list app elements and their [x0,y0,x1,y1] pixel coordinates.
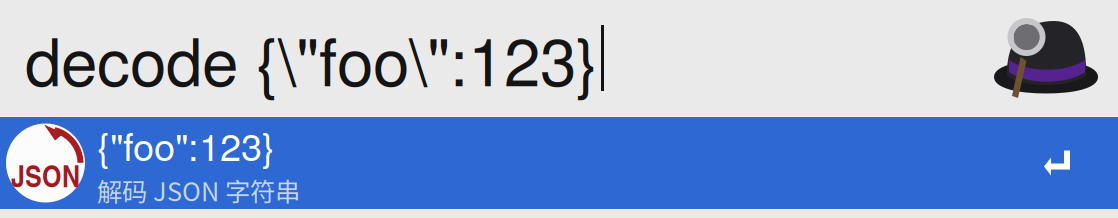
staticText: decode {\"foo\":123} [25,11,598,105]
staticText: 解码 JSON 字符串 [97,172,300,209]
staticText: {"foo":123} [97,117,275,172]
button[interactable]: JSON [0,117,1118,209]
staticText: JSON [11,153,80,197]
